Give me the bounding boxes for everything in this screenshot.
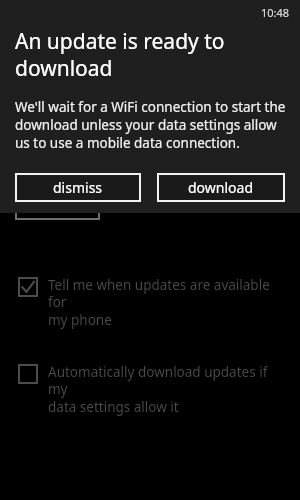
button[interactable]: download [157,173,285,202]
staticText: An update is ready to download [15,27,225,82]
button[interactable] [15,200,100,220]
button[interactable]: Tell me when updates are available for [0,270,300,335]
staticText: my phone [48,311,112,329]
staticText: We'll wait for a WiFi connection to star… [15,98,287,152]
staticText: Tell me when updates are available for [48,276,286,311]
staticText: Automatically download updates if my [48,363,286,398]
staticText: dismiss [53,178,103,197]
staticText: 10:48 [261,5,290,20]
staticText: download [188,178,254,197]
button[interactable]: dismiss [15,173,141,202]
staticText: data settings allow it [48,398,179,416]
button[interactable]: Automatically download updates if my [0,357,300,422]
